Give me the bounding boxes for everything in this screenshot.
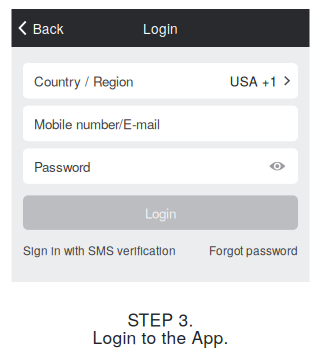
button[interactable]: Forgot password <box>209 242 298 259</box>
button[interactable]: Show password <box>269 148 290 184</box>
staticText: USA +1 <box>230 71 277 90</box>
button[interactable]: Sign in with SMS verification <box>23 242 176 259</box>
staticText: Back <box>33 18 64 38</box>
staticText: Password <box>34 157 90 176</box>
staticText: Forgot password <box>209 242 298 259</box>
button[interactable]: Country / Region <box>23 63 298 98</box>
button[interactable]: Mobile number/E-mail <box>23 106 298 141</box>
staticText: Mobile number/E-mail <box>34 114 160 133</box>
staticText: Sign in with SMS verification <box>23 242 176 259</box>
staticText: Login to the App. <box>92 324 228 349</box>
button[interactable]: Back <box>11 9 74 47</box>
staticText: Login <box>145 203 176 222</box>
button[interactable]: Login <box>23 195 298 230</box>
staticText: Country / Region <box>34 71 133 90</box>
staticText: Login <box>143 18 178 38</box>
staticText: STEP 3. <box>127 307 193 331</box>
